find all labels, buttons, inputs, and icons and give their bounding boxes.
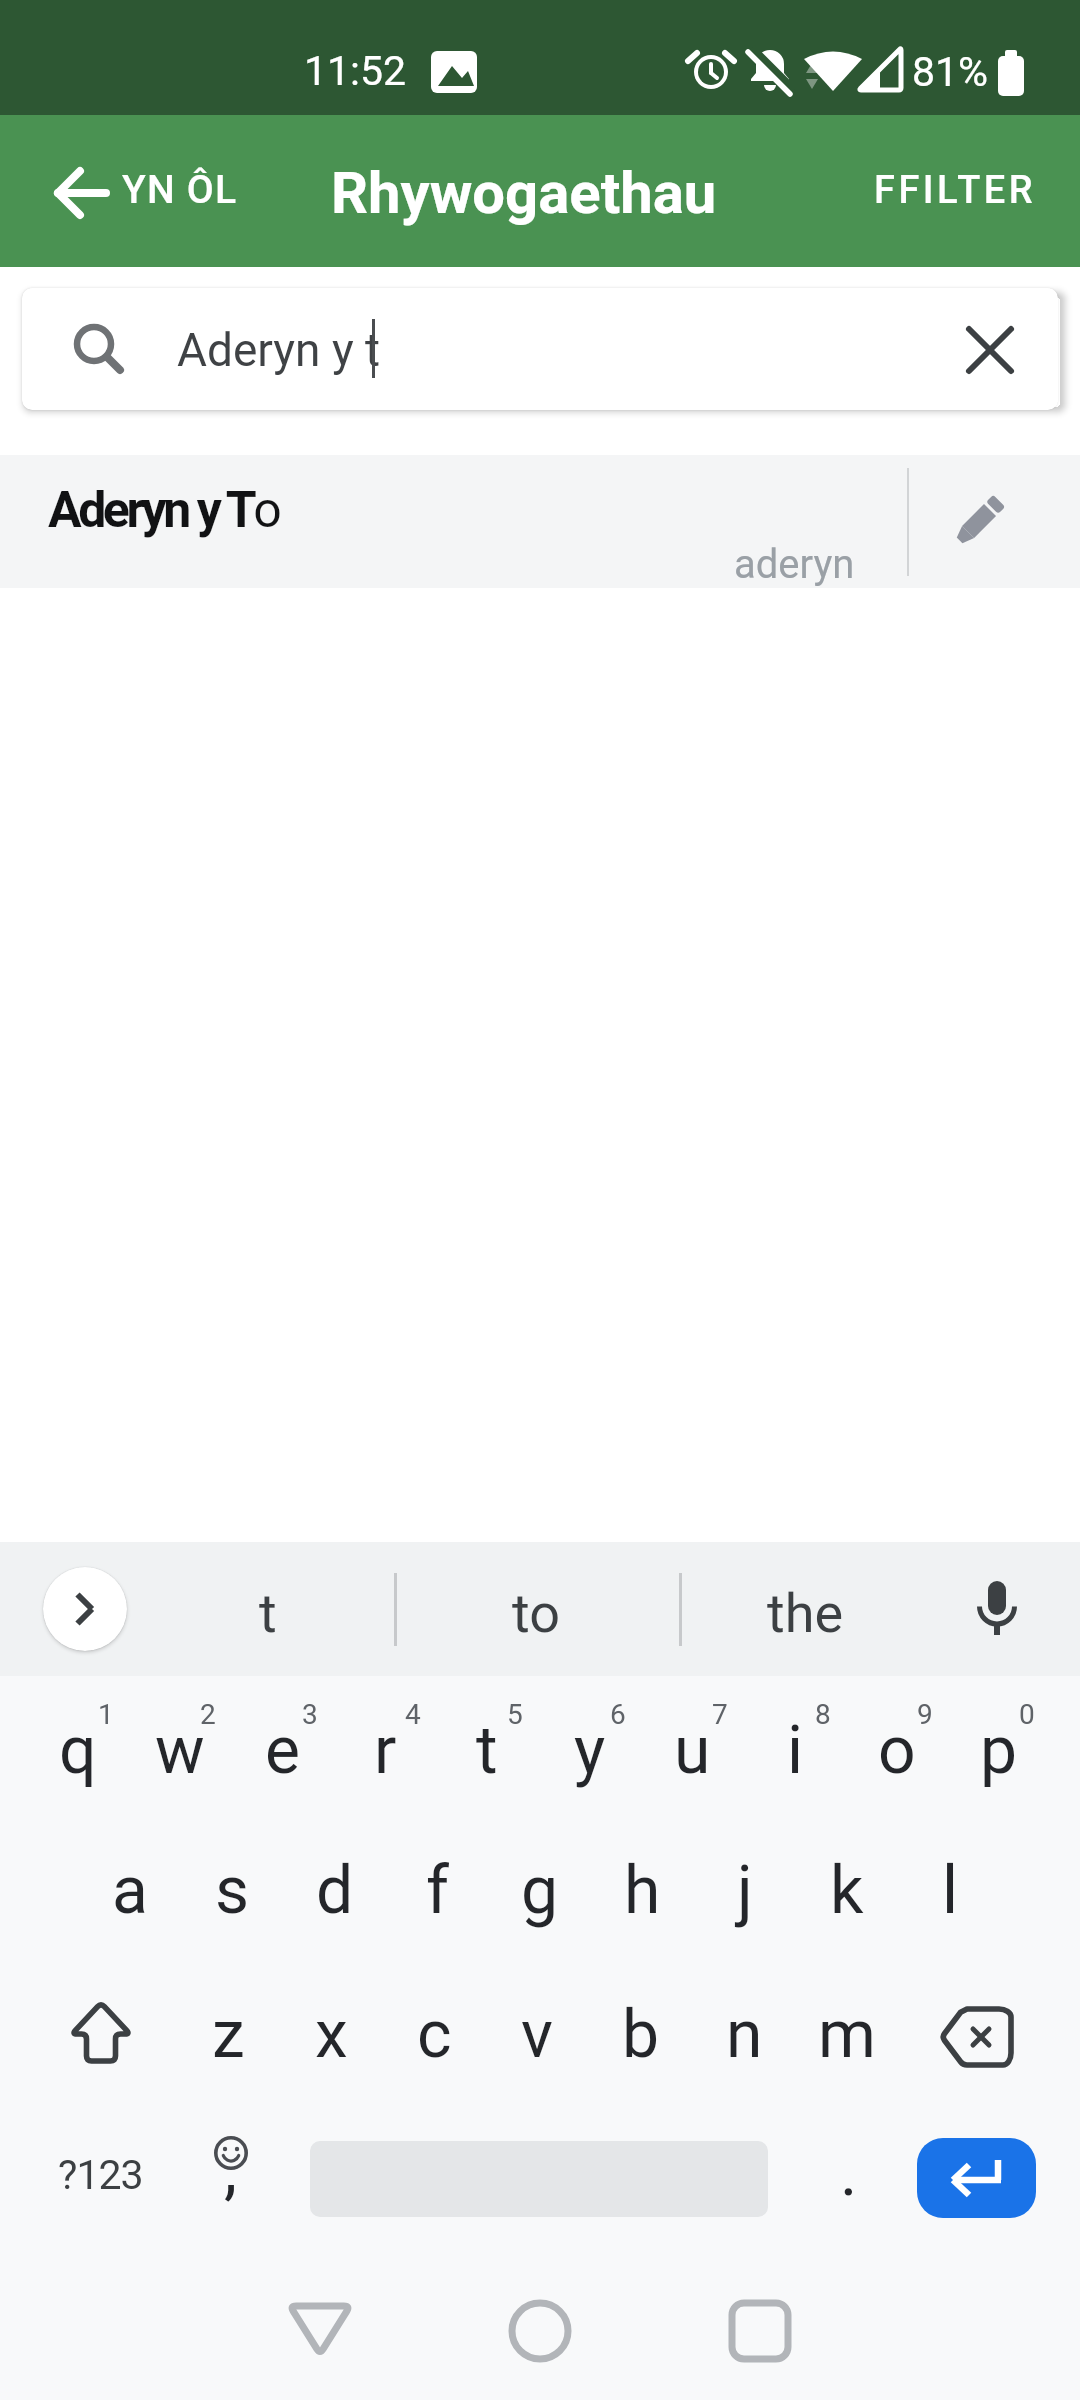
staticText: aderyn [734,541,855,588]
staticText: p [980,1712,1018,1789]
button[interactable]: d [284,1830,386,1950]
button[interactable]: m [796,1974,898,2094]
button[interactable]: q [27,1690,129,1810]
button[interactable]: c [383,1974,485,2094]
staticText: z [212,1996,245,2073]
staticText: i [787,1712,804,1789]
button[interactable]: x [280,1974,382,2094]
staticText: ?123 [58,2151,143,2199]
staticText: s [215,1852,250,1929]
staticText: n [726,1996,763,2073]
staticText: b [622,1996,660,2073]
button[interactable]: r [334,1690,436,1810]
staticText: y [574,1712,606,1789]
button[interactable] [923,467,1033,577]
staticText: 4 [405,1698,421,1731]
button[interactable]: v [486,1974,588,2094]
staticText: v [521,1996,553,2073]
button[interactable]: s [181,1830,283,1950]
staticText: r [374,1712,397,1789]
button[interactable]: t [436,1690,538,1810]
staticText: 8 [815,1698,831,1731]
staticText: 6 [610,1698,626,1731]
staticText: t [259,1582,277,1645]
staticText: t [476,1712,498,1789]
button[interactable]: k [796,1830,898,1950]
button[interactable]: p [948,1690,1050,1810]
button[interactable]: . [803,2114,895,2230]
staticText: w [155,1712,205,1789]
button[interactable]: g [489,1830,591,1950]
staticText: j [737,1852,753,1929]
button[interactable] [710,2281,810,2381]
button[interactable]: w [129,1690,231,1810]
button[interactable] [0,455,1080,588]
staticText: Aderyn y t [177,323,381,377]
staticText: m [818,1996,876,2073]
button[interactable]: t [160,1563,376,1663]
staticText: 5 [507,1698,523,1731]
button[interactable]: o [846,1690,948,1810]
button[interactable]: j [694,1830,796,1950]
staticText: Rhywogaethau [331,159,717,227]
button[interactable]: f [386,1830,488,1950]
button[interactable]: the [697,1563,913,1663]
staticText: 11:52 [304,47,407,95]
button[interactable] [917,2138,1036,2218]
button[interactable] [43,1567,127,1651]
staticText: to [512,1582,560,1645]
staticText: g [521,1852,559,1929]
button[interactable] [915,1974,1035,2094]
staticText: 2 [200,1698,216,1731]
staticText: u [674,1712,711,1789]
button[interactable]: , [175,2120,287,2236]
staticText: YN ÔL [122,167,238,213]
button[interactable]: h [591,1830,693,1950]
staticText: o [878,1712,916,1789]
button[interactable]: z [177,1974,279,2094]
staticText: 81% [912,48,989,96]
button[interactable]: y [539,1690,641,1810]
staticText: 0 [1019,1698,1035,1731]
staticText: a [112,1852,148,1929]
staticText: k [830,1852,864,1929]
staticText: f [426,1852,449,1929]
button[interactable]: b [590,1974,692,2094]
button[interactable]: l [899,1830,1001,1950]
button[interactable] [270,2281,370,2381]
staticText: FFILTER [874,168,1037,213]
staticText: q [59,1712,97,1789]
staticText: x [315,1996,348,2073]
staticText: l [942,1852,959,1929]
button[interactable]: e [231,1690,333,1810]
staticText: . [840,2134,858,2211]
staticText: d [316,1852,354,1929]
staticText: c [417,1996,452,2073]
staticText: 9 [917,1698,933,1731]
button[interactable]: n [693,1974,795,2094]
button[interactable]: YN ÔL [30,140,250,240]
staticText: h [624,1852,661,1929]
staticText: , [224,2131,237,2208]
staticText: e [265,1712,300,1789]
button[interactable] [490,2281,590,2381]
button[interactable]: u [641,1690,743,1810]
staticText: 3 [302,1698,318,1731]
button[interactable]: a [79,1830,181,1950]
staticText: 7 [712,1698,728,1731]
button[interactable] [952,1566,1042,1652]
button[interactable] [41,1973,161,2093]
button[interactable]: FFILTER [850,140,1060,240]
staticText: Aderyn y To [48,481,279,540]
staticText: 1 [98,1698,114,1731]
button[interactable]: to [428,1563,644,1663]
staticText: the [767,1582,844,1645]
button[interactable]: ?123 [42,2117,158,2233]
button[interactable]: i [744,1690,846,1810]
button[interactable] [950,310,1030,390]
